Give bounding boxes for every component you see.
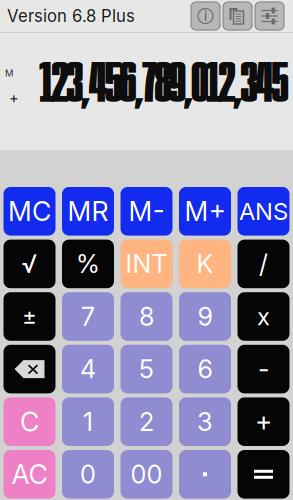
staticText: % [76,249,100,279]
staticText: 1 [83,406,93,437]
button[interactable]: 2 [120,397,172,446]
button[interactable]: ± [3,292,55,341]
staticText: - [258,354,269,384]
button[interactable]: 1 [62,397,114,446]
staticText: 00 [130,459,162,490]
button[interactable]: K [179,240,231,288]
staticText: ± [22,303,37,330]
button[interactable]: √ [3,240,55,288]
staticText: + [9,89,19,107]
button[interactable]: Equals [237,450,289,499]
button[interactable]: 3 [179,397,231,446]
staticText: MR [67,195,108,227]
staticText: M+ [184,195,225,227]
button[interactable]: INT [120,240,172,288]
button[interactable]: M- [120,187,172,236]
button[interactable]: + [237,397,289,446]
button[interactable]: MC [3,187,55,236]
staticText: / [259,249,268,279]
button[interactable]: Info [191,2,220,30]
button[interactable]: MR [62,187,114,236]
button[interactable]: 9 [179,292,231,341]
button[interactable]: 8 [120,292,172,341]
button[interactable]: % [62,240,114,288]
staticText: INT [125,249,167,279]
staticText: 6 [197,354,212,384]
button[interactable]: 7 [62,292,114,341]
staticText: 123,456,789,012,345 [39,55,289,116]
button[interactable]: M+ [179,187,231,236]
button[interactable]: 6 [179,345,231,393]
staticText: K [196,249,213,279]
staticText: 5 [139,354,154,384]
button[interactable]: AC [3,450,55,499]
staticText: + [255,406,272,438]
button[interactable]: Settings [255,2,284,30]
staticText: M- [128,195,164,227]
button[interactable]: / [237,240,289,288]
button[interactable]: 5 [120,345,172,393]
staticText: M [5,67,13,79]
staticText: MC [8,195,51,227]
button[interactable]: - [237,345,289,393]
staticText: 7 [81,301,95,332]
staticText: C [20,406,39,438]
button[interactable]: 00 [120,450,172,499]
staticText: Version 6.8 Plus [7,6,135,26]
staticText: ANS [239,197,288,226]
button[interactable]: x [237,292,289,341]
button[interactable]: 4 [62,345,114,393]
staticText: x [257,302,270,331]
button[interactable]: ANS [237,187,289,236]
button[interactable]: Backspace [3,345,55,393]
button[interactable]: C [3,397,55,446]
staticText: 8 [139,301,154,332]
staticText: 3 [197,406,213,437]
staticText: 4 [80,354,96,384]
staticText: 9 [197,301,212,332]
button[interactable]: 0 [62,450,114,499]
staticText: 2 [139,406,154,437]
staticText: 0 [80,459,96,490]
staticText: √ [21,249,37,279]
button[interactable]: Copy [223,2,252,30]
staticText: i [204,8,207,24]
button[interactable]: Decimal point [179,450,231,499]
staticText: AC [11,458,47,490]
